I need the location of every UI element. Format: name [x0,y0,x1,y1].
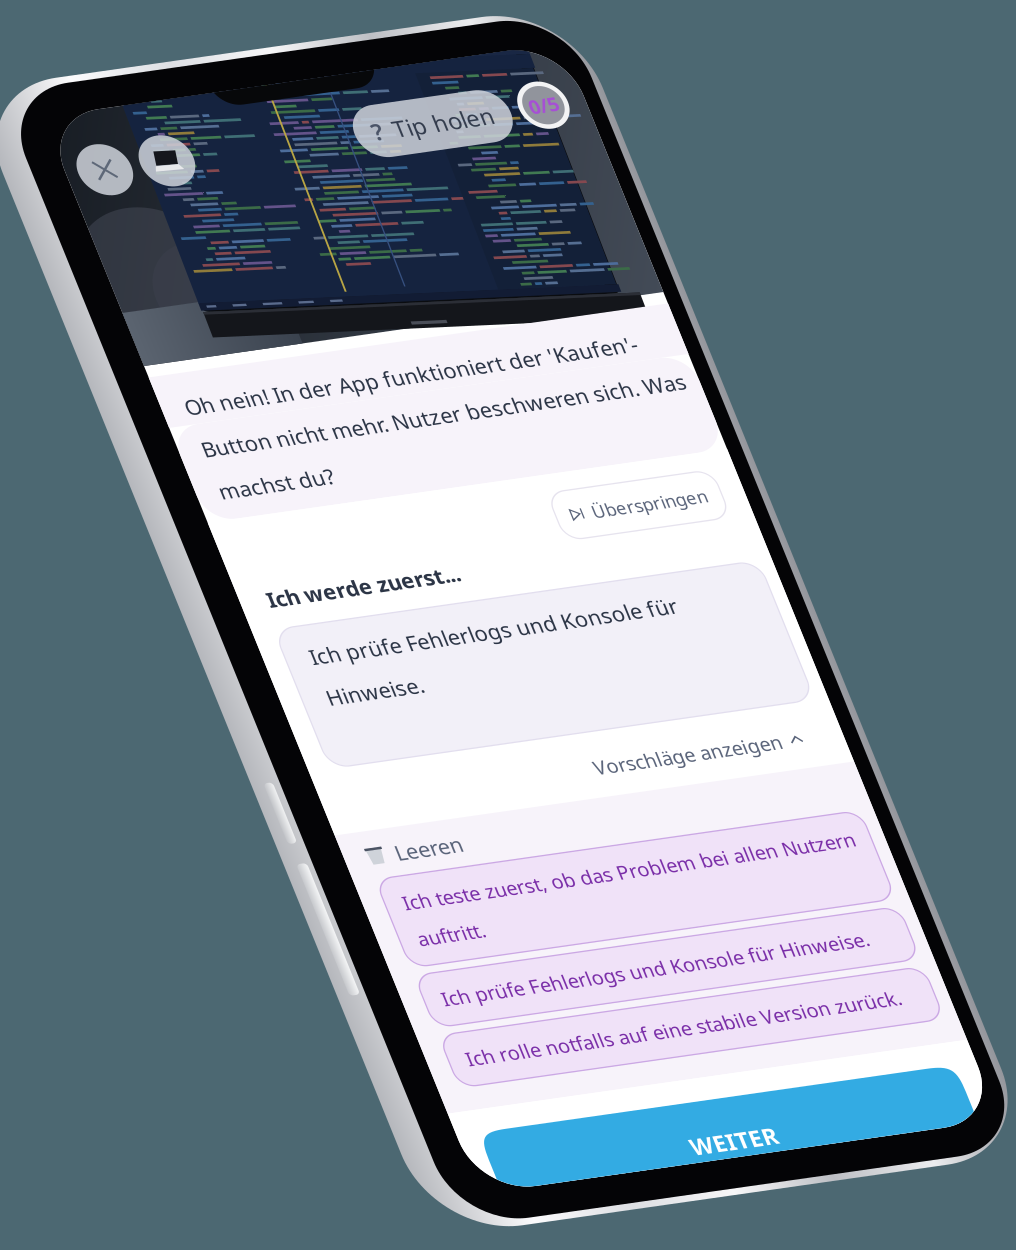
staticText: Oh nein! In der App funktioniert der 'Ka… [17,222,383,310]
staticText: Ich werde zuerst... [20,375,165,396]
staticText: Ich prüfe Fehlerlogs und Konsole für Hin… [29,693,352,712]
staticText: Ich teste zuerst, ob das Problem bei all… [29,617,371,665]
button[interactable]: Ich prüfe Fehlerlogs und Konsole für Hin… [0,682,393,723]
staticText: Tip holen [247,35,323,58]
staticText: Ich rolle notfalls auf eine stabile Vers… [29,740,358,760]
button[interactable]: Ich teste zuerst, ob das Problem bei all… [0,606,393,676]
staticText: Überspringen [278,345,365,363]
button[interactable]: Vorschläge anzeigen [201,532,367,559]
button[interactable]: Überspringen [251,335,376,373]
staticText: 0/5 [350,35,372,54]
staticText: ? [231,35,239,58]
button[interactable]: Leeren [0,568,393,600]
staticText: Ich prüfe Fehlerlogs und Konsole für Hin… [34,422,312,475]
button[interactable]: Ich rolle notfalls auf eine stabile Vers… [0,729,393,771]
button[interactable]: Fortschritt null von fünf [343,26,380,63]
staticText: Vorschläge anzeigen [205,536,347,555]
button[interactable]: WEITER [0,798,393,901]
button[interactable]: ? [218,26,336,67]
